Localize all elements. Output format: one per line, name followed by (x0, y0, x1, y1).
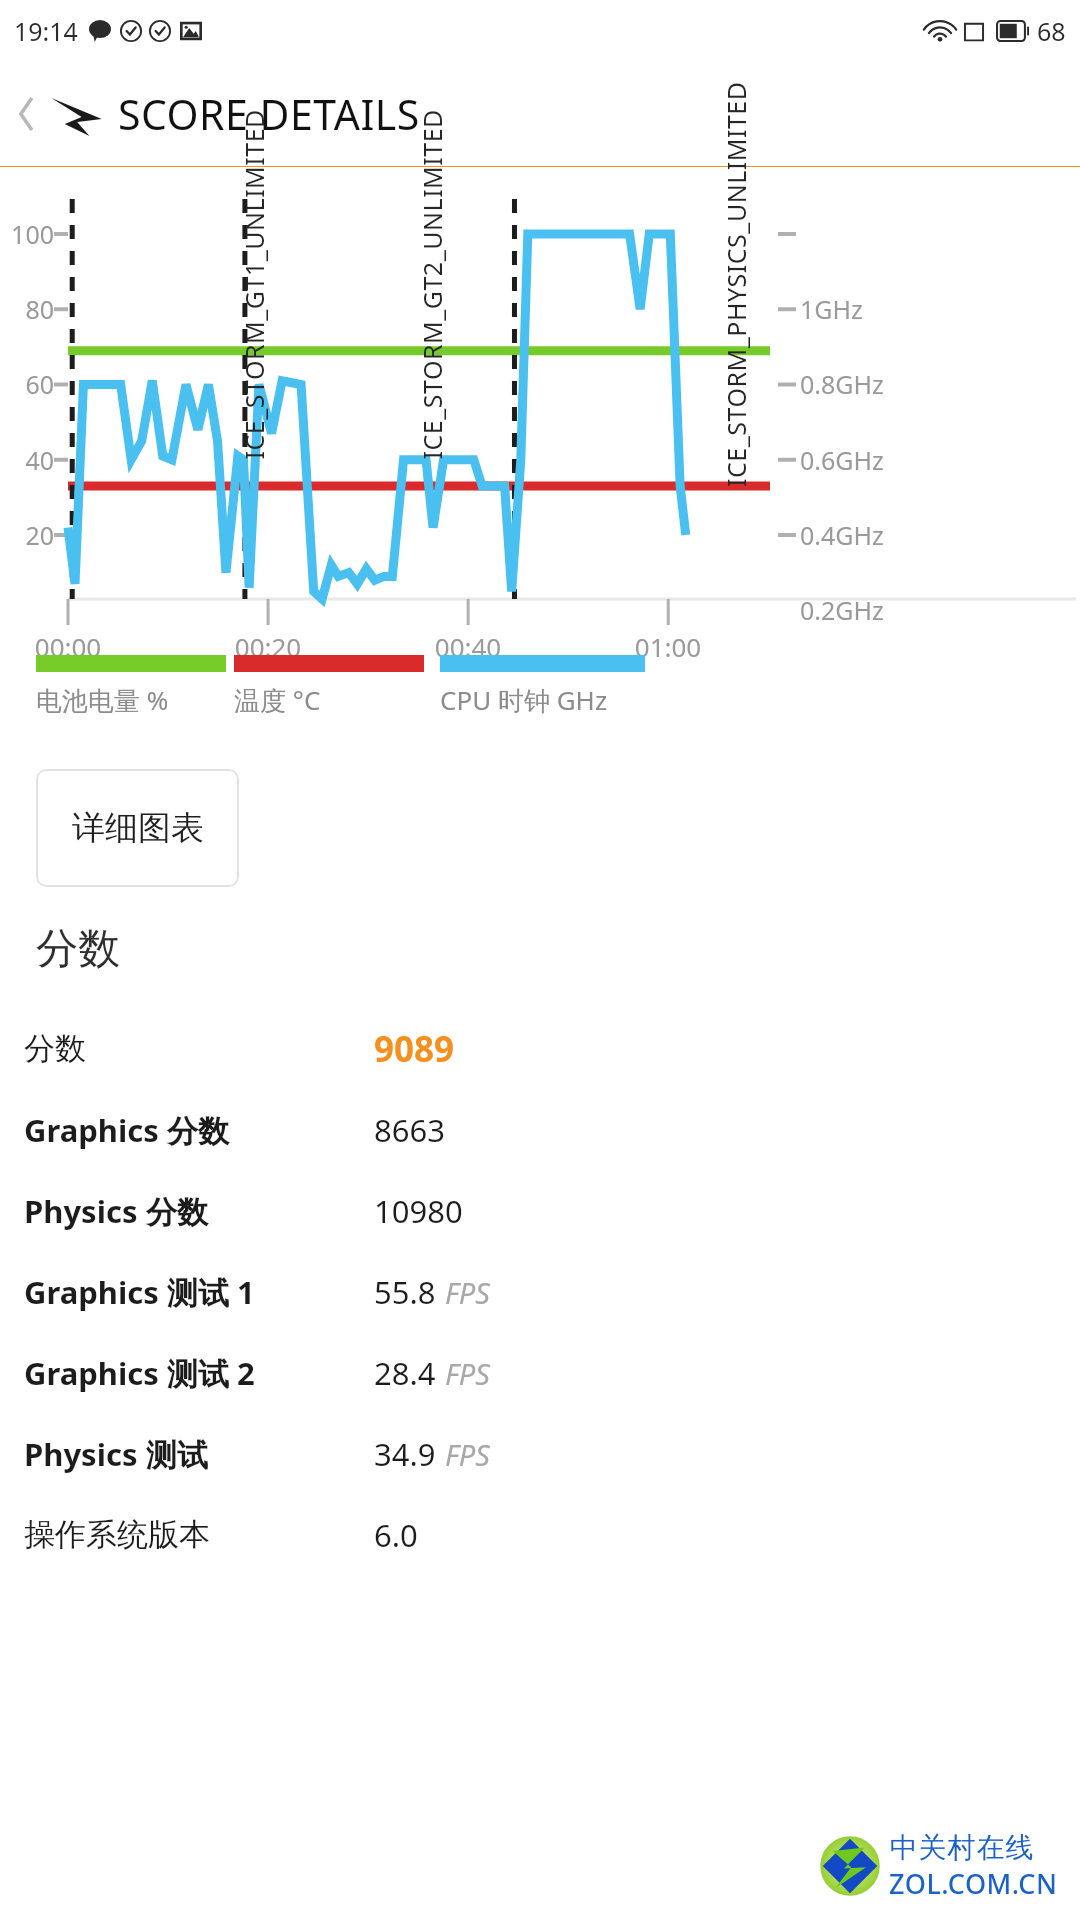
button[interactable]: Back (10, 84, 44, 144)
staticText: 分数 (159, 1109, 230, 1151)
staticText: SCORE DETAILS (118, 86, 420, 142)
staticText: 20 (0, 518, 54, 552)
button[interactable]: Back (0, 62, 1080, 166)
button[interactable]: 详细图表 (36, 769, 239, 887)
staticText: 34.9 (374, 1433, 436, 1475)
staticText: 测试 (138, 1433, 209, 1475)
staticText: 00:20 (218, 629, 318, 664)
staticText: Graphics (24, 1109, 159, 1151)
staticText: 68 (1037, 14, 1066, 48)
staticText: 6.0 (374, 1514, 418, 1556)
staticText: 操作系统版本 (24, 1515, 210, 1554)
staticText: FPS (445, 1273, 490, 1312)
staticText: Graphics (24, 1271, 159, 1313)
button[interactable]: 操作系统版本 (0, 1494, 1080, 1575)
staticText: 分数 (36, 923, 120, 976)
staticText: 0.4GHz (800, 518, 884, 552)
staticText: 中关村在线 (889, 1830, 1034, 1865)
staticText: 60 (0, 367, 54, 401)
staticText: 8663 (374, 1109, 445, 1151)
staticText: 10980 (374, 1190, 463, 1232)
staticText: 测试 1 (159, 1271, 255, 1313)
staticText: Physics (24, 1190, 138, 1232)
button[interactable]: Graphics (0, 1089, 1080, 1170)
staticText: 温度 °C (234, 682, 321, 718)
staticText: 00:40 (418, 629, 518, 664)
staticText: 详细图表 (72, 807, 204, 849)
staticText: 55.8 (374, 1271, 436, 1313)
button[interactable]: Graphics (0, 1332, 1080, 1413)
staticText: 分数 (138, 1190, 209, 1232)
staticText: 28.4 (374, 1352, 436, 1394)
staticText: 0.2GHz (800, 593, 884, 627)
staticText: 1GHz (800, 292, 863, 326)
staticText: 0.8GHz (800, 367, 884, 401)
staticText: ICE_STORM_PHYSICS_UNLIMITED (719, 81, 753, 487)
staticText: 80 (0, 292, 54, 326)
staticText: 0.6GHz (800, 443, 884, 477)
staticText: 40 (0, 443, 54, 477)
staticText: 测试 2 (159, 1352, 255, 1394)
staticText: ZOL.COM.CN (889, 1865, 1058, 1902)
staticText: 分数 (24, 1029, 86, 1068)
staticText: 9089 (374, 1025, 455, 1073)
staticText: Graphics (24, 1352, 159, 1394)
staticText: 01:00 (618, 629, 718, 664)
staticText: ICE_STORM_GT2_UNLIMITED (414, 108, 448, 459)
staticText: FPS (445, 1354, 490, 1393)
staticText: FPS (445, 1435, 490, 1474)
staticText: 19:14 (14, 14, 78, 48)
button[interactable]: Physics (0, 1170, 1080, 1251)
button[interactable]: 分数 (0, 1008, 1080, 1089)
staticText: 00:00 (18, 629, 118, 664)
button[interactable]: Graphics (0, 1251, 1080, 1332)
staticText: CPU 时钟 GHz (440, 682, 608, 718)
staticText: Physics (24, 1433, 138, 1475)
staticText: 100 (0, 217, 54, 251)
staticText: ICE_STORM_GT1_UNLIMITED (236, 108, 270, 459)
button[interactable]: Physics (0, 1413, 1080, 1494)
staticText: 电池电量 % (36, 682, 169, 718)
